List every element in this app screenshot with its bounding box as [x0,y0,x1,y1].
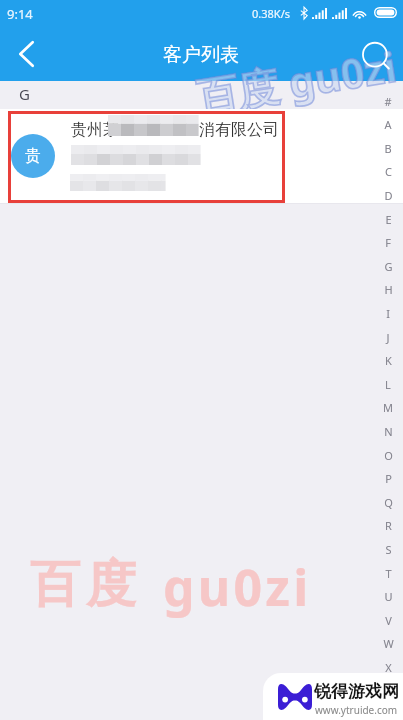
staticText: O [384,448,393,463]
button[interactable]: Z [377,703,399,720]
staticText: N [384,424,393,439]
staticText: H [384,282,393,297]
button[interactable]: Search [355,33,397,75]
staticText: I [386,306,390,321]
button[interactable]: R [377,514,399,537]
button[interactable]: F [377,231,399,254]
staticText: 贵州茅 [71,120,119,140]
staticText: 贵 [25,146,41,166]
staticText: 消有限公司 [199,120,279,140]
staticText: T [385,566,392,581]
button[interactable]: C [377,160,399,183]
button[interactable]: B [377,137,399,160]
button[interactable]: Y [377,680,399,703]
button[interactable]: Back [5,33,47,75]
staticText: E [385,212,392,227]
staticText: S [385,542,392,557]
staticText: 百度 gu0zi [193,37,401,124]
button[interactable]: X [377,656,399,679]
button[interactable]: O [377,444,399,467]
staticText: L [385,377,391,392]
button[interactable]: S [377,538,399,561]
staticText: # [384,94,392,109]
button[interactable]: A [377,113,399,136]
button[interactable]: P [377,467,399,490]
staticText: V [385,613,392,628]
staticText: 百度 [27,553,139,616]
button[interactable]: D [377,184,399,207]
staticText: www.ytruide.com [315,703,398,717]
staticText: 锐得游戏网 [314,681,399,702]
staticText: K [385,353,392,368]
staticText: C [385,164,392,179]
button[interactable]: N [377,420,399,443]
button[interactable]: M [377,396,399,419]
staticText: 9:14 [7,5,33,23]
button[interactable]: G [377,255,399,278]
button[interactable]: E [377,208,399,231]
staticText: B [384,141,392,156]
staticText: F [385,235,391,250]
staticText: A [384,117,392,132]
button[interactable]: U [377,585,399,608]
button[interactable]: T [377,562,399,585]
button[interactable]: 贵 [0,109,403,203]
staticText: J [386,330,390,345]
staticText: D [384,188,393,203]
staticText: 百度 gu0zi [193,37,401,124]
button[interactable]: J [377,326,399,349]
staticText: R [385,518,392,533]
button[interactable]: Q [377,491,399,514]
button[interactable]: I [377,302,399,325]
button[interactable]: # [377,90,399,113]
staticText: G [384,259,393,274]
button[interactable]: Watermark logo [263,673,403,720]
staticText: X [385,660,392,675]
button[interactable]: V [377,609,399,632]
staticText: W [383,636,394,651]
button[interactable]: L [377,373,399,396]
staticText: gu0zi [163,553,312,621]
button[interactable]: H [377,278,399,301]
staticText: M [383,400,393,415]
button[interactable]: W [377,632,399,655]
staticText: Z [385,707,392,720]
staticText: 客户列表 [163,43,239,67]
staticText: Q [384,495,393,510]
button[interactable]: K [377,349,399,372]
staticText: Y [385,684,392,699]
staticText: P [385,471,392,486]
staticText: 0.38K/s [252,6,290,21]
staticText: U [384,589,393,604]
staticText: G [19,84,30,104]
